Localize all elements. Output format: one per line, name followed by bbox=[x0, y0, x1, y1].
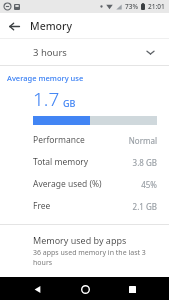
button[interactable]: Home bbox=[74, 278, 96, 300]
staticText: Memory used by apps bbox=[33, 234, 127, 246]
staticText: Average memory use bbox=[7, 73, 84, 83]
staticText: 3 hours bbox=[33, 46, 67, 59]
button[interactable]: Performance bbox=[0, 129, 169, 151]
staticText: 36 apps used memory in the last 3 hours bbox=[33, 248, 157, 268]
button[interactable]: Free bbox=[0, 195, 169, 217]
staticText: Performance bbox=[33, 134, 85, 146]
staticText: Memory bbox=[30, 19, 73, 33]
button[interactable]: 3 hours bbox=[0, 39, 169, 65]
staticText: 73% bbox=[125, 2, 138, 11]
staticText: 1.7 bbox=[33, 86, 60, 112]
staticText: 45% bbox=[141, 179, 157, 190]
staticText: 3.8 GB bbox=[132, 157, 157, 168]
staticText: 2.1 GB bbox=[132, 201, 157, 212]
staticText: Normal bbox=[128, 135, 157, 146]
staticText: Average used (%) bbox=[33, 178, 102, 190]
button[interactable]: Back bbox=[4, 16, 24, 36]
button[interactable]: Back bbox=[26, 278, 48, 300]
button[interactable]: Recent apps bbox=[121, 278, 143, 300]
staticText: 21:01 bbox=[148, 2, 165, 11]
staticText: Total memory bbox=[33, 156, 89, 168]
staticText: GB bbox=[63, 97, 76, 109]
staticText: Free bbox=[33, 200, 51, 212]
button[interactable]: Total memory bbox=[0, 151, 169, 173]
button[interactable]: Average used (%) bbox=[0, 173, 169, 195]
button[interactable]: Memory used by apps bbox=[0, 225, 169, 277]
